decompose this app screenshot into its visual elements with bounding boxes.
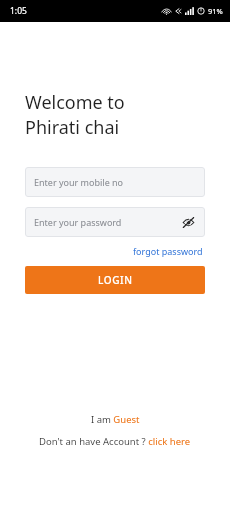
button[interactable]: Enter your mobile no xyxy=(25,167,205,197)
staticText: Enter your password xyxy=(34,216,180,228)
button[interactable]: Don't an have Account ? click here xyxy=(35,433,195,450)
staticText: Enter your mobile no xyxy=(34,176,196,188)
staticText: Welcome to xyxy=(25,90,125,115)
button[interactable]: Enter your password xyxy=(25,207,205,237)
button[interactable]: I am Guest xyxy=(87,411,144,428)
staticText: 91% xyxy=(208,6,223,16)
staticText: Don't an have Account ? click here xyxy=(39,435,191,448)
staticText: LOGIN xyxy=(98,273,133,287)
staticText: Phirati chai xyxy=(25,115,120,140)
staticText: I am Guest xyxy=(91,413,140,426)
button[interactable]: LOGIN xyxy=(25,266,205,294)
staticText: 1:05 xyxy=(10,5,27,17)
button[interactable]: Show password xyxy=(180,214,196,230)
button[interactable]: forgot password xyxy=(131,243,205,259)
staticText: forgot password xyxy=(133,245,203,257)
